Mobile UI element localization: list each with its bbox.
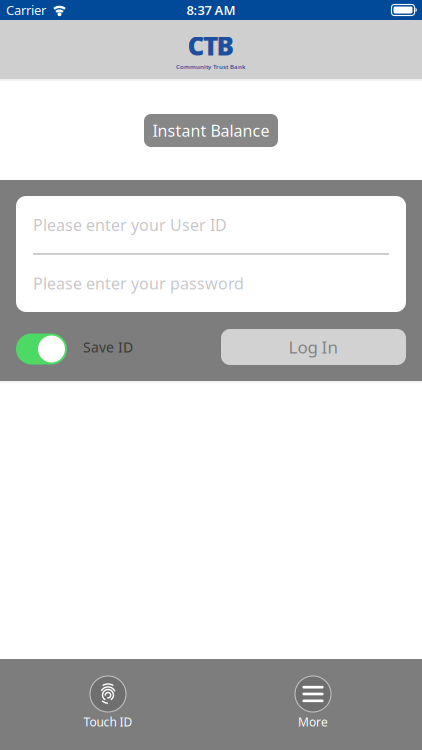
staticText: Carrier xyxy=(6,1,46,19)
button[interactable]: Touch ID xyxy=(2,659,213,750)
button[interactable]: Log In xyxy=(221,329,406,365)
staticText: Touch ID xyxy=(83,714,132,730)
staticText: More xyxy=(298,714,328,730)
staticText: Instant Balance xyxy=(152,120,269,141)
staticText: Save ID xyxy=(83,338,133,356)
button[interactable]: Please enter your password xyxy=(16,254,406,312)
staticText: Log In xyxy=(288,336,338,358)
staticText: CTB xyxy=(187,28,234,63)
staticText: Please enter your User ID xyxy=(33,214,227,235)
staticText: Community Trust Bank xyxy=(176,63,246,71)
staticText: 8:37 AM xyxy=(186,1,235,19)
button[interactable]: Please enter your User ID xyxy=(16,196,406,253)
button[interactable]: Instant Balance xyxy=(144,114,278,147)
button[interactable]: Save ID xyxy=(16,333,67,364)
button[interactable]: More xyxy=(207,659,418,750)
staticText: Please enter your password xyxy=(33,273,244,294)
